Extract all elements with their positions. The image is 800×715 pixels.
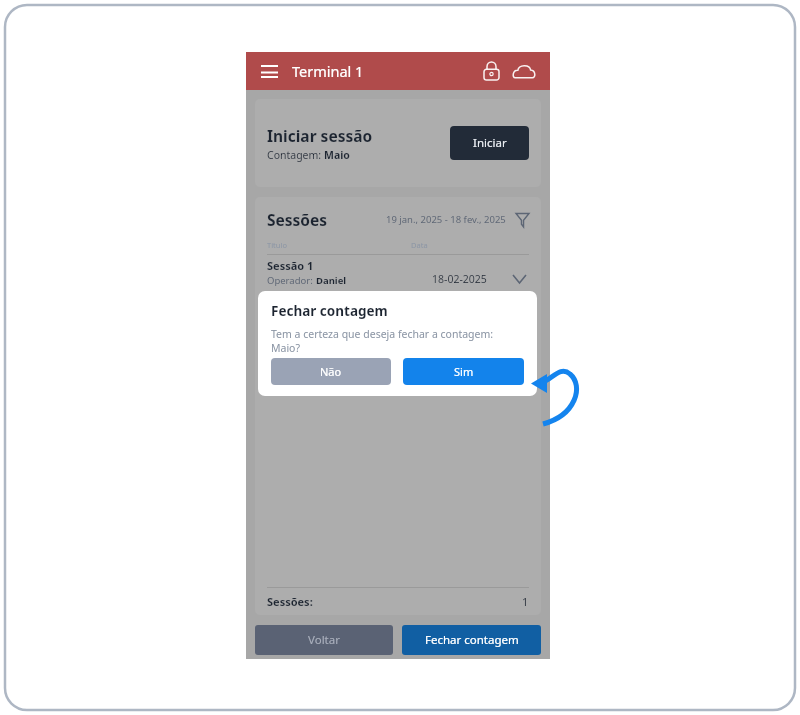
button[interactable]: Menu xyxy=(258,60,280,82)
button[interactable]: Cloud sync xyxy=(510,57,538,85)
staticText: Não xyxy=(320,364,342,379)
button[interactable]: Não xyxy=(271,358,391,385)
staticText: Fechar contagem xyxy=(425,632,519,648)
staticText: Iniciar xyxy=(473,135,507,151)
staticText: Voltar xyxy=(308,632,340,648)
staticText: Sim xyxy=(454,364,474,379)
staticText: Fechar contagem xyxy=(271,302,388,320)
staticText: Sessão 1 xyxy=(267,258,314,273)
staticText: Contagem: xyxy=(267,148,324,162)
button[interactable]: Fechar contagem xyxy=(402,625,541,655)
staticText: 1 xyxy=(522,594,529,609)
staticText: Iniciar sessão xyxy=(267,125,373,146)
staticText: Fechado xyxy=(303,288,341,301)
button[interactable]: Sessão 1 xyxy=(255,255,541,303)
staticText: Estado: xyxy=(267,288,303,301)
staticText: Terminal 1 xyxy=(292,61,364,81)
button[interactable]: Expand xyxy=(509,269,529,289)
staticText: Daniel xyxy=(316,274,347,287)
staticText: Sessões: xyxy=(267,594,313,609)
staticText: Maio xyxy=(324,148,350,162)
button[interactable]: Iniciar xyxy=(450,126,529,160)
staticText: 18-02-2025 xyxy=(432,272,487,286)
button[interactable]: Sim xyxy=(403,358,524,385)
staticText: Tem a certeza que deseja fechar a contag… xyxy=(271,327,524,355)
staticText: 19 jan., 2025 - 18 fev., 2025 xyxy=(386,213,506,226)
staticText: Data xyxy=(411,240,428,250)
staticText: Sessões xyxy=(267,209,328,230)
button[interactable]: Lock xyxy=(478,58,504,84)
staticText: Operador: xyxy=(267,274,316,287)
button[interactable]: Voltar xyxy=(255,625,393,655)
button[interactable]: Filter xyxy=(513,211,531,229)
staticText: Título xyxy=(267,240,287,250)
